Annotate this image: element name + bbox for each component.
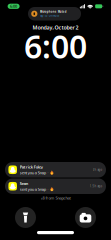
staticText: 2h ago bbox=[93, 168, 103, 171]
staticText: 1.5h ago bbox=[90, 184, 103, 188]
staticText: 6:00 bbox=[10, 4, 17, 9]
button[interactable]: Patrick Foley bbox=[5, 162, 106, 177]
staticText: sent you a Snap bbox=[20, 170, 46, 175]
staticText: Patrick Foley bbox=[20, 164, 43, 169]
staticText: 6:00 bbox=[24, 25, 87, 67]
button[interactable]: Camera bbox=[75, 207, 96, 228]
button[interactable]: Sean bbox=[5, 178, 106, 194]
staticText: · bbox=[47, 170, 48, 175]
staticText: Monday, October 2 bbox=[32, 24, 78, 31]
staticText: sent you a Snap bbox=[20, 186, 46, 192]
button[interactable]: Flashlight bbox=[15, 207, 36, 228]
staticText: Sean bbox=[20, 181, 29, 186]
staticText: +8 from Snapchat bbox=[40, 195, 70, 201]
staticText: Microphone Muted bbox=[40, 10, 67, 14]
button[interactable]: Microphone Muted bbox=[28, 7, 81, 20]
staticText: Tap to Unmute bbox=[40, 14, 60, 17]
staticText: · bbox=[47, 186, 48, 192]
